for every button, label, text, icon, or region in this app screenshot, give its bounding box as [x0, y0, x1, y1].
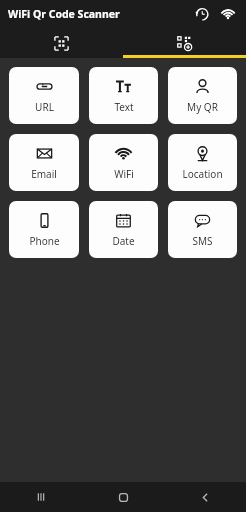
staticText: My QR [187, 100, 218, 114]
staticText: URL [35, 100, 54, 114]
button[interactable]: WiFi [218, 4, 238, 24]
button[interactable]: My QR [168, 67, 237, 124]
button[interactable]: History [192, 4, 212, 24]
staticText: SMS [192, 234, 213, 248]
staticText: Date [112, 234, 135, 248]
button[interactable]: SMS [168, 201, 237, 258]
staticText: WiFi [114, 167, 134, 181]
button[interactable]: Date [89, 201, 158, 258]
staticText: WiFi Qr Code Scanner [8, 7, 120, 21]
button[interactable]: Home [82, 482, 164, 512]
button[interactable]: Email [9, 134, 79, 191]
button[interactable]: Text [89, 67, 158, 124]
staticText: Text [114, 100, 134, 114]
staticText: Location [182, 167, 223, 181]
button[interactable]: Scan QR code [0, 28, 123, 58]
button[interactable]: Recent apps [0, 482, 82, 512]
button[interactable]: Phone [9, 201, 79, 258]
button[interactable]: Location [168, 134, 237, 191]
button[interactable]: URL [9, 67, 79, 124]
staticText: Email [31, 167, 57, 181]
staticText: Phone [29, 234, 60, 248]
button[interactable]: Create QR code [123, 28, 246, 58]
button[interactable]: Back [164, 482, 246, 512]
button[interactable]: WiFi [89, 134, 158, 191]
